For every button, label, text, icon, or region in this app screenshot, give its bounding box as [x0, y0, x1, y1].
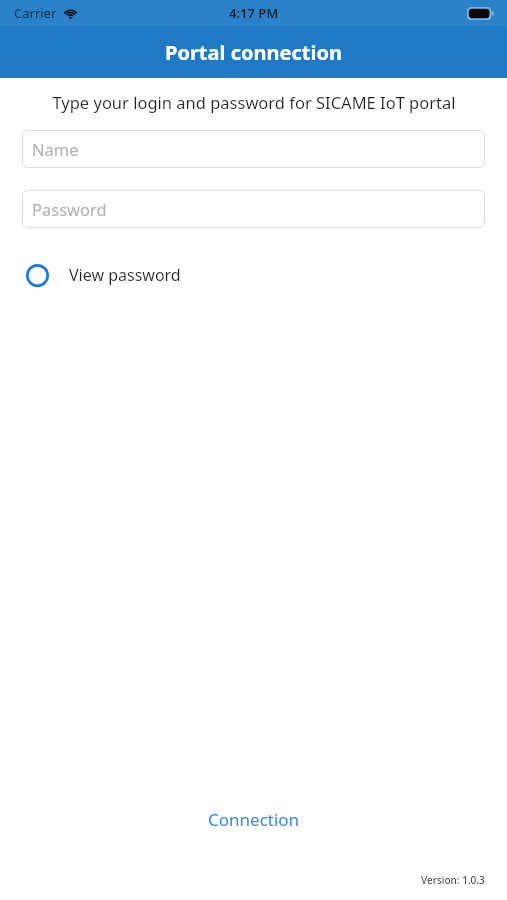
button[interactable]: Password: [22, 190, 485, 228]
staticText: Carrier: [14, 4, 57, 22]
staticText: Password: [32, 198, 107, 220]
staticText: Connection: [208, 808, 300, 831]
staticText: Version: 1.0.3: [421, 873, 485, 887]
button[interactable]: Name: [22, 130, 485, 168]
button[interactable]: View password toggle: [0, 256, 507, 294]
staticText: 4:17 PM: [229, 4, 279, 22]
staticText: Portal connection: [165, 39, 342, 66]
staticText: View password: [69, 264, 181, 286]
button[interactable]: Connection: [0, 800, 507, 839]
staticText: Name: [32, 138, 79, 160]
staticText: Type your login and password for SICAME …: [52, 91, 456, 113]
other: View password toggle: [22, 260, 52, 290]
